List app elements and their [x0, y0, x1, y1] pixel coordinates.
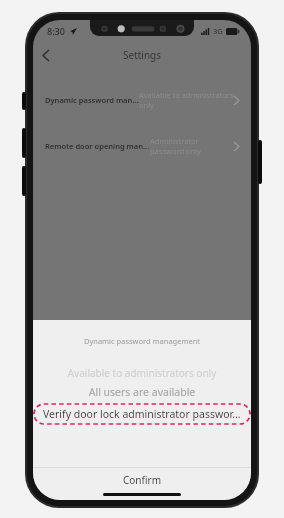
staticText: Verify door lock administrator passwor..…	[43, 407, 241, 421]
button[interactable]: Available to administrators only	[33, 366, 251, 380]
button[interactable]: Confirm	[33, 468, 251, 497]
button[interactable]: All users are available	[33, 385, 251, 399]
staticText: 8:30	[47, 25, 65, 37]
button[interactable]: Dynamic password man...	[33, 90, 251, 110]
staticText: Dynamic password management	[33, 336, 251, 346]
staticText: Administrator password only	[150, 136, 234, 156]
staticText: Dynamic password man...	[45, 95, 139, 105]
button[interactable]: Remote door opening man...	[33, 136, 251, 156]
staticText: Remote door opening man...	[45, 141, 150, 151]
staticText: Settings	[123, 48, 162, 62]
button[interactable]: Back	[33, 42, 59, 68]
staticText: 3G	[213, 26, 223, 36]
button[interactable]: Verify door lock administrator passwor..…	[33, 403, 251, 425]
staticText: Available to administrators only	[139, 90, 234, 110]
staticText: Confirm	[123, 473, 162, 487]
